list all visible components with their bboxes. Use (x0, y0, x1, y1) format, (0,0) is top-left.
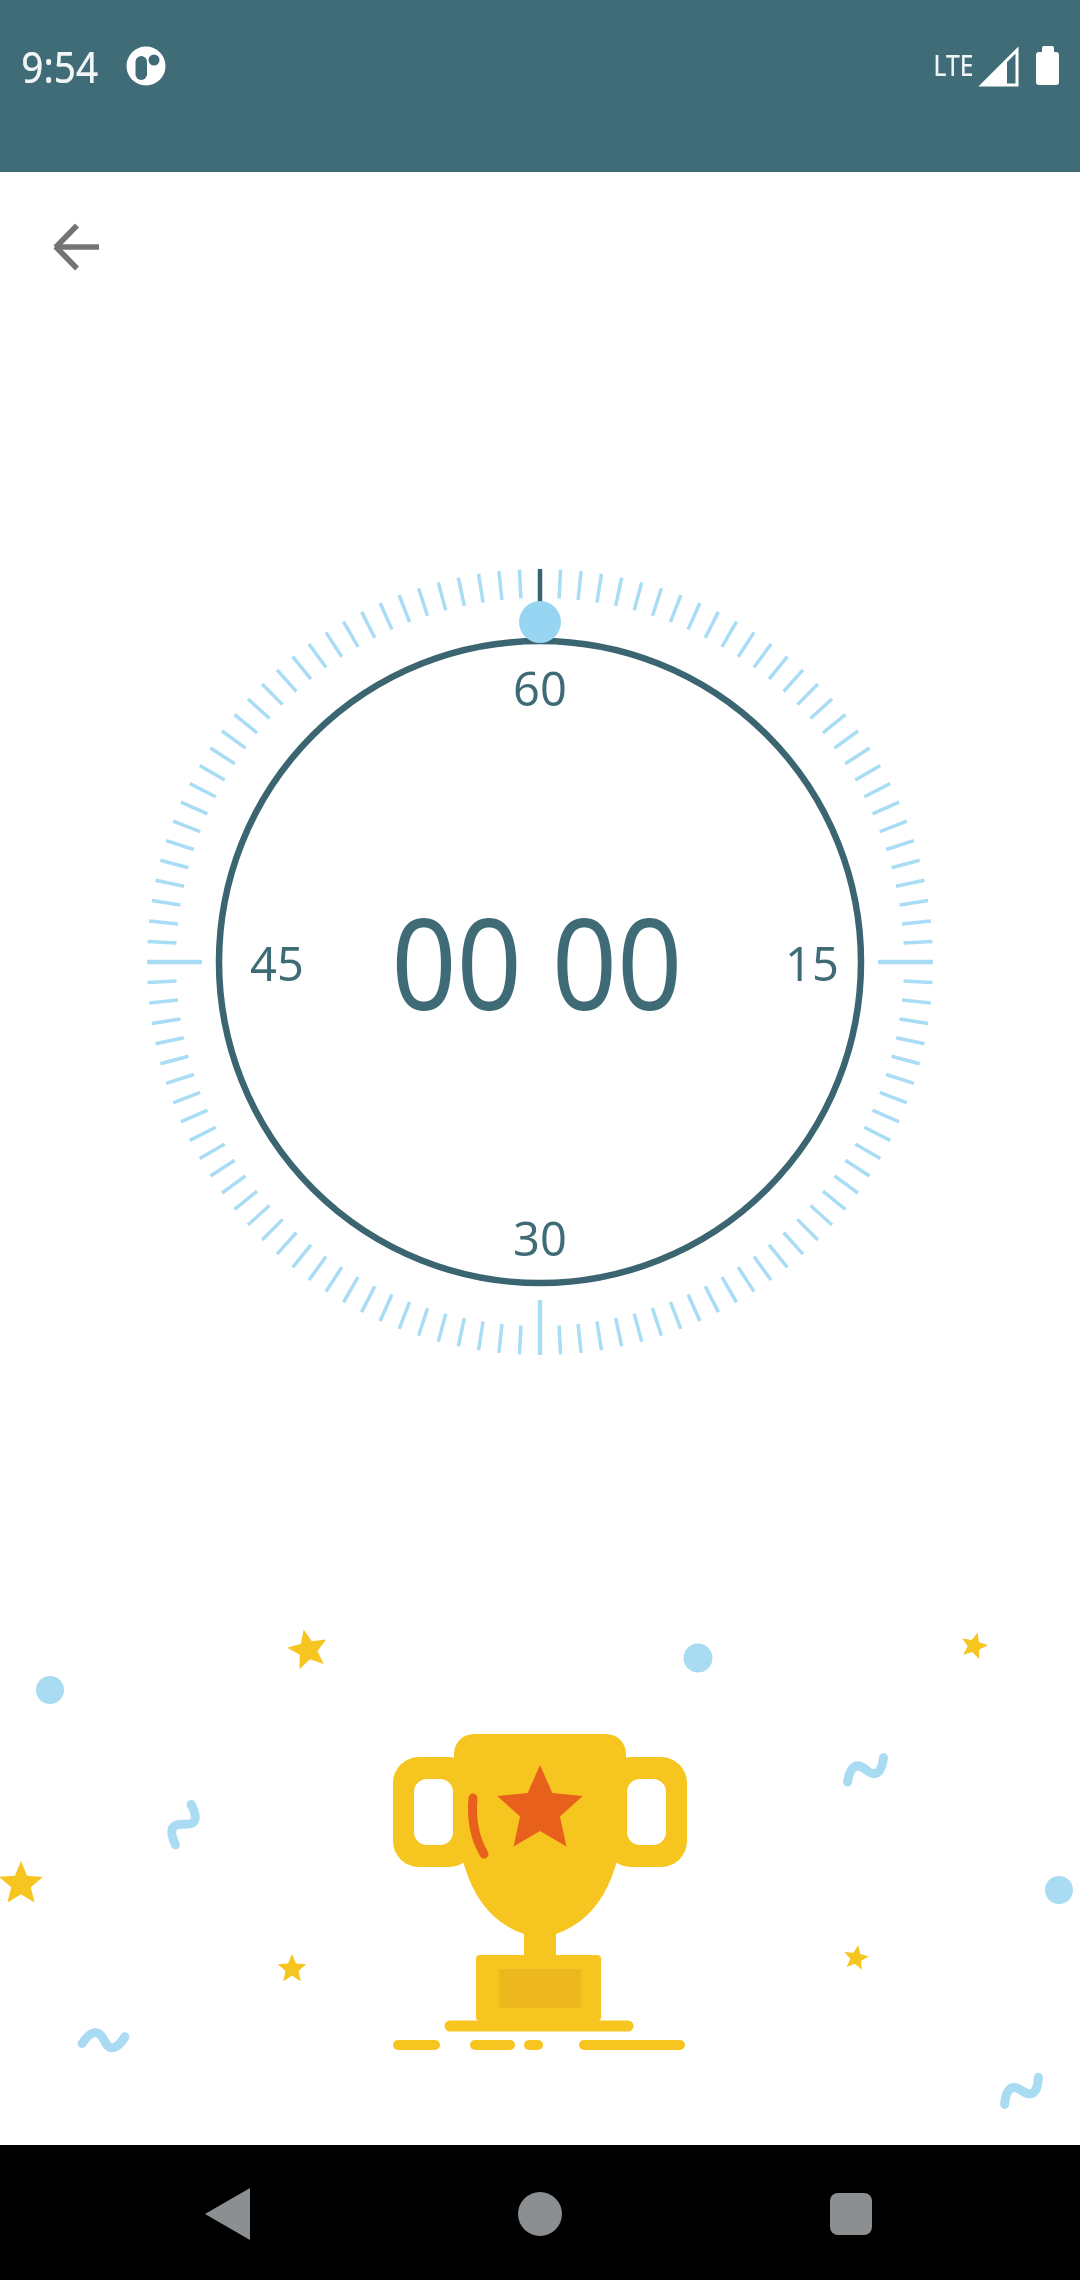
staticText: 15 (785, 931, 839, 995)
staticText: 60 (513, 656, 567, 720)
staticText: LTE (933, 45, 973, 84)
staticText: 9:54 (21, 36, 99, 96)
button[interactable] (29, 199, 125, 295)
staticText: 00 00 (391, 874, 683, 1047)
staticText: 30 (513, 1206, 567, 1270)
button[interactable] (178, 2164, 278, 2264)
staticText: 45 (250, 931, 304, 995)
button[interactable] (801, 2164, 901, 2264)
button[interactable] (490, 2164, 590, 2264)
